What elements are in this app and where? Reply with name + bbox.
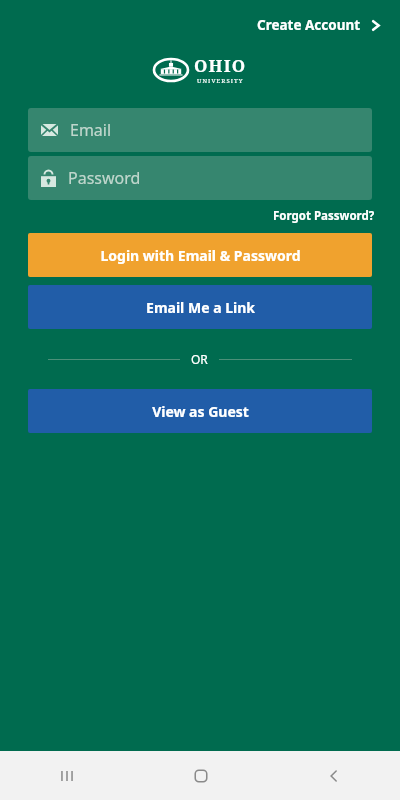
staticText: Login with Email & Password [100, 246, 301, 265]
button[interactable]: Email [28, 108, 372, 152]
button[interactable]: View as Guest [28, 389, 372, 433]
staticText: View as Guest [152, 402, 249, 421]
staticText: Create Account [257, 16, 361, 34]
staticText: OHIO [194, 54, 247, 77]
button[interactable]: Home [134, 751, 267, 800]
staticText: OR [191, 351, 208, 367]
button[interactable]: Create Account [253, 12, 386, 38]
staticText: Forgot Password? [273, 208, 375, 224]
button[interactable]: Login with Email & Password [28, 233, 372, 277]
staticText: UNIVERSITY [197, 77, 244, 85]
button[interactable]: Forgot Password? [271, 206, 377, 226]
button[interactable]: Recent apps [0, 751, 134, 800]
staticText: Email Me a Link [146, 298, 255, 317]
button[interactable]: Back [267, 751, 400, 800]
button[interactable]: Email Me a Link [28, 285, 372, 329]
button[interactable]: Password [28, 156, 372, 200]
staticText: Password [68, 167, 141, 189]
staticText: Email [70, 119, 112, 141]
